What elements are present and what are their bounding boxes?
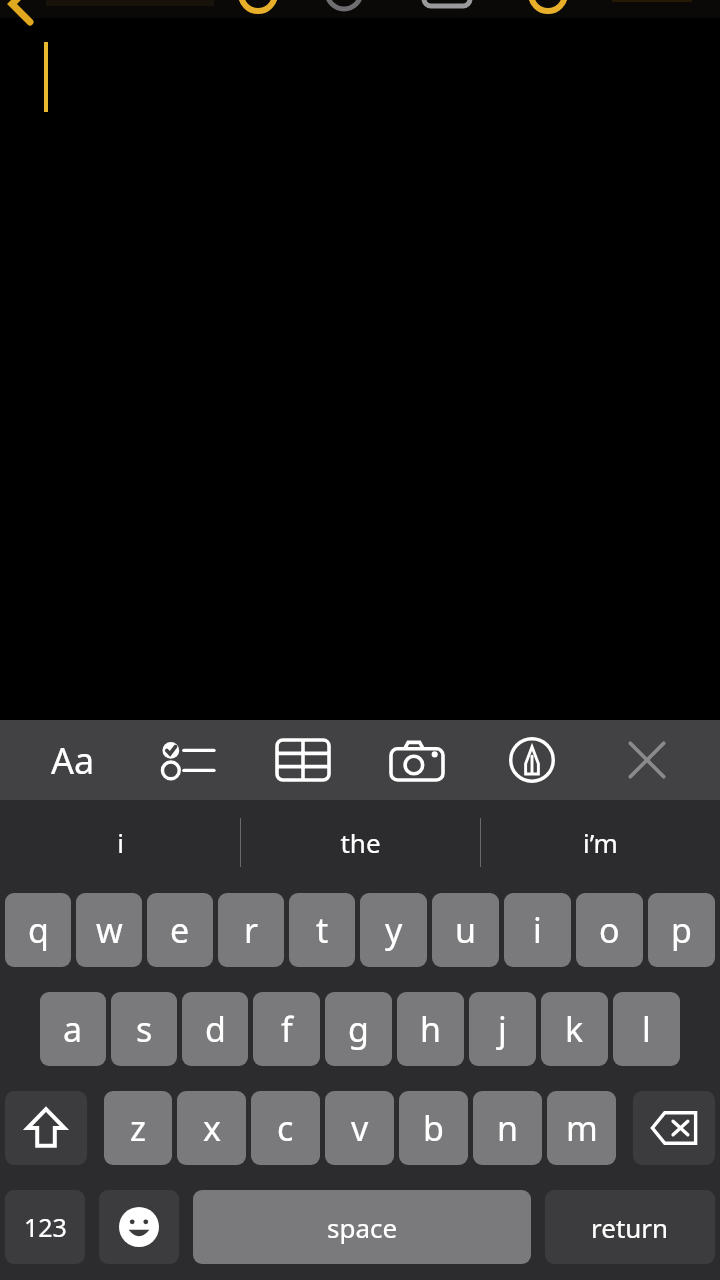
button[interactable]: u [432, 893, 499, 967]
button[interactable]: return [545, 1190, 715, 1264]
button[interactable]: space [193, 1190, 531, 1264]
button[interactable]: Emoji [99, 1190, 179, 1264]
staticText: n [497, 1105, 519, 1151]
button[interactable]: n [473, 1091, 542, 1165]
staticText: r [244, 907, 259, 953]
button[interactable]: c [251, 1091, 320, 1165]
staticText: p [671, 907, 692, 953]
button[interactable]: Checklist [140, 724, 236, 796]
button[interactable]: Close keyboard [599, 724, 695, 796]
button[interactable]: h [397, 992, 464, 1066]
staticText: u [455, 907, 477, 953]
button[interactable]: r [218, 893, 284, 967]
staticText: the [340, 825, 381, 860]
staticText: g [348, 1006, 369, 1052]
staticText: k [565, 1006, 584, 1052]
button[interactable]: p [648, 893, 715, 967]
staticText: z [130, 1105, 146, 1151]
button[interactable]: g [325, 992, 392, 1066]
button[interactable]: Shift [5, 1091, 87, 1165]
staticText: d [205, 1006, 226, 1052]
staticText: i [117, 825, 124, 860]
staticText: space [327, 1210, 398, 1245]
staticText: a [63, 1006, 83, 1052]
button[interactable]: m [547, 1091, 616, 1165]
staticText: return [591, 1210, 669, 1245]
staticText: c [277, 1105, 294, 1151]
button[interactable]: k [541, 992, 608, 1066]
staticText: f [281, 1006, 293, 1052]
button[interactable]: d [182, 992, 248, 1066]
button[interactable]: Markup [484, 724, 580, 796]
staticText: 123 [24, 1210, 67, 1244]
button[interactable] [0, 18, 720, 698]
button[interactable]: v [325, 1091, 394, 1165]
button[interactable]: w [76, 893, 142, 967]
button[interactable]: f [253, 992, 320, 1066]
staticText: j [498, 1006, 507, 1052]
staticText: i’m [583, 825, 618, 860]
button[interactable]: Camera [369, 724, 465, 796]
button[interactable]: 123 [5, 1190, 85, 1264]
staticText: q [28, 907, 49, 953]
staticText: s [136, 1006, 153, 1052]
button[interactable]: i [0, 800, 240, 885]
button[interactable]: Backspace [633, 1091, 715, 1165]
button[interactable]: s [111, 992, 177, 1066]
staticText: o [599, 907, 620, 953]
staticText: m [566, 1105, 598, 1151]
staticText: v [351, 1105, 369, 1151]
staticText: e [170, 907, 190, 953]
staticText: h [420, 1006, 442, 1052]
button[interactable]: b [399, 1091, 468, 1165]
button[interactable]: Table [255, 724, 351, 796]
button[interactable]: x [177, 1091, 246, 1165]
button[interactable]: y [360, 893, 427, 967]
button[interactable]: the [241, 800, 480, 885]
staticText: w [96, 907, 123, 953]
button[interactable]: q [5, 893, 71, 967]
button[interactable]: a [40, 992, 106, 1066]
button[interactable]: o [576, 893, 643, 967]
button[interactable]: t [289, 893, 355, 967]
staticText: y [385, 907, 403, 953]
staticText: i [533, 907, 542, 953]
button[interactable]: e [147, 893, 213, 967]
button[interactable]: j [469, 992, 536, 1066]
button[interactable]: i’m [481, 800, 720, 885]
staticText: l [642, 1006, 651, 1052]
button[interactable]: i [504, 893, 571, 967]
staticText: t [316, 907, 329, 953]
staticText: x [203, 1105, 221, 1151]
button[interactable]: z [104, 1091, 172, 1165]
staticText: Aa [51, 736, 95, 785]
button[interactable]: l [613, 992, 680, 1066]
staticText: b [423, 1105, 444, 1151]
button[interactable]: Text format [25, 724, 121, 796]
